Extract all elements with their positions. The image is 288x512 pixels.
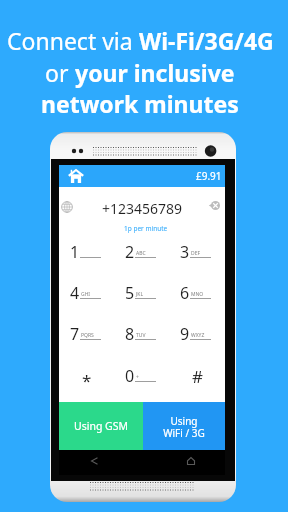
- staticText: WXYZ: [191, 332, 205, 339]
- staticText: DEF: [191, 250, 201, 257]
- staticText: GHI: [81, 291, 91, 298]
- button[interactable]: 5: [115, 272, 170, 313]
- staticText: 1p per minute: [124, 224, 168, 233]
- button[interactable]: 4: [59, 272, 115, 313]
- staticText: 0: [125, 365, 135, 385]
- button[interactable]: 9: [170, 313, 225, 355]
- button[interactable]: 7: [59, 313, 115, 355]
- button[interactable]: Clear number: [208, 198, 222, 212]
- button[interactable]: Using WiFi / 3G: [143, 402, 225, 450]
- staticText: *: [82, 369, 92, 389]
- staticText: 8: [125, 323, 135, 343]
- staticText: MNO: [191, 291, 204, 298]
- staticText: 9: [180, 323, 190, 343]
- button[interactable]: 1: [59, 231, 115, 272]
- staticText: 5: [125, 282, 135, 302]
- button[interactable]: 3: [170, 231, 225, 272]
- staticText: Using WiFi / 3G: [163, 414, 205, 440]
- staticText: Wi-Fi/3G/4G: [139, 25, 274, 56]
- staticText: 6: [180, 282, 190, 302]
- button[interactable]: Home: [63, 165, 89, 187]
- staticText: 4: [70, 282, 80, 302]
- button[interactable]: 0: [115, 355, 170, 397]
- staticText: #: [192, 365, 203, 385]
- staticText: JKL: [136, 291, 144, 298]
- staticText: Using GSM: [74, 419, 129, 433]
- staticText: your inclusive: [75, 57, 235, 88]
- staticText: Connect via: [7, 25, 139, 56]
- staticText: PQRS: [81, 332, 94, 339]
- staticText: 2: [125, 241, 135, 261]
- staticText: or: [45, 57, 75, 88]
- button[interactable]: *: [59, 355, 115, 397]
- staticText: TUV: [136, 332, 146, 339]
- button[interactable]: Select country: [57, 197, 77, 217]
- staticText: network minutes: [41, 88, 239, 119]
- button[interactable]: 8: [115, 313, 170, 355]
- staticText: £9.91: [196, 169, 222, 183]
- staticText: 3: [180, 241, 190, 261]
- staticText: +: [136, 374, 139, 381]
- staticText: +123456789: [102, 199, 183, 215]
- button[interactable]: Using GSM: [59, 402, 143, 450]
- button[interactable]: 6: [170, 272, 225, 313]
- staticText: ABC: [136, 250, 146, 257]
- staticText: 1: [70, 241, 80, 261]
- button[interactable]: #: [170, 355, 225, 397]
- button[interactable]: 2: [115, 231, 170, 272]
- staticText: 7: [70, 323, 80, 343]
